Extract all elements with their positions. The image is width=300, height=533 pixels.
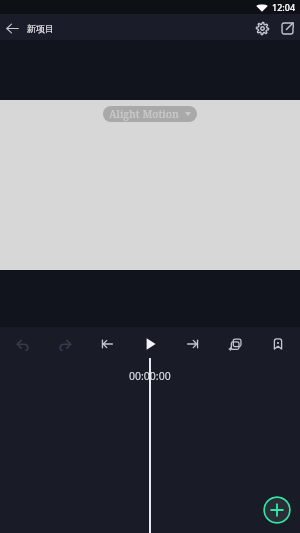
button[interactable]: Bookmark <box>262 328 294 360</box>
staticText: 12:04 <box>272 1 296 13</box>
button[interactable]: Back <box>0 16 24 40</box>
button[interactable]: Export <box>274 16 300 40</box>
button[interactable]: Play <box>134 328 166 360</box>
button[interactable]: Loop <box>219 328 251 360</box>
button[interactable]: Add <box>263 496 291 524</box>
button[interactable]: Settings <box>250 16 274 40</box>
staticText: 00:00:00 <box>129 369 171 383</box>
button[interactable]: Undo <box>6 328 38 360</box>
staticText: 新项目 <box>27 23 54 34</box>
button[interactable]: Redo <box>49 328 81 360</box>
button[interactable]: Skip to end <box>177 328 209 360</box>
button[interactable]: Alight Motion <box>103 106 197 122</box>
button[interactable]: Skip to start <box>91 328 123 360</box>
staticText: Alight Motion <box>109 107 179 121</box>
